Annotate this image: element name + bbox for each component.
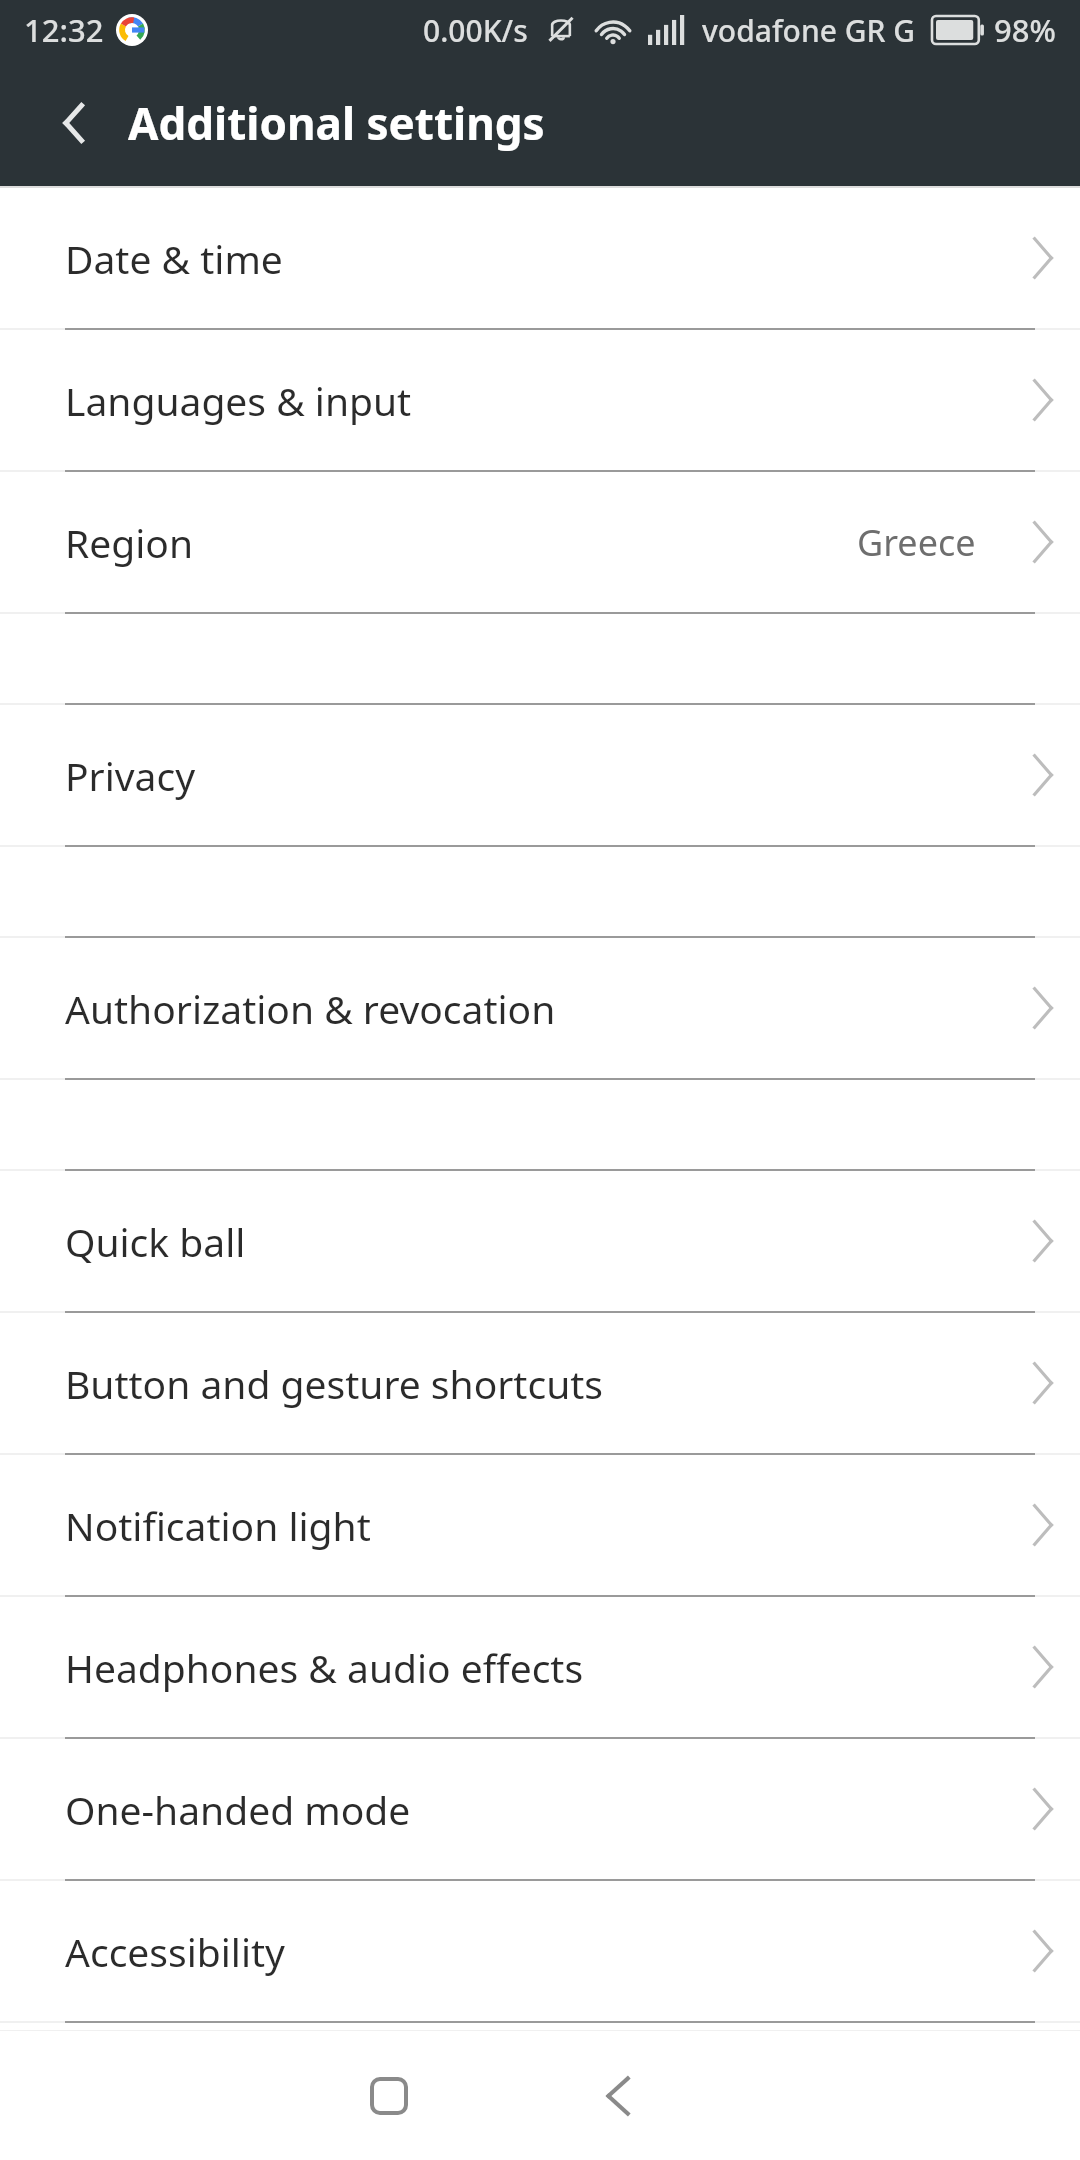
staticText: 0.00K/s (423, 10, 528, 51)
staticText: vodafone GR G (702, 10, 916, 51)
staticText: Region (65, 516, 193, 569)
staticText: One-handed mode (65, 1783, 411, 1836)
button[interactable]: Back (40, 87, 112, 159)
button[interactable]: Headphones & audio effects (0, 1597, 1080, 1737)
button[interactable]: Accessibility (0, 1881, 1080, 2021)
staticText: Greece (857, 518, 976, 567)
button[interactable]: Region (0, 472, 1080, 612)
staticText: 12:32 (24, 9, 104, 51)
staticText: Notification light (65, 1499, 371, 1552)
staticText: 98% (994, 9, 1056, 51)
button[interactable]: Date & time (0, 188, 1080, 328)
button[interactable]: Back (559, 2036, 679, 2156)
staticText: Authorization & revocation (65, 982, 556, 1035)
staticText: Quick ball (65, 1215, 246, 1268)
button[interactable]: Notification light (0, 1455, 1080, 1595)
staticText: Accessibility (65, 1925, 285, 1978)
staticText: Headphones & audio effects (65, 1641, 584, 1694)
button[interactable]: Quick ball (0, 1171, 1080, 1311)
staticText: Additional settings (128, 93, 545, 153)
button[interactable]: Privacy (0, 705, 1080, 845)
button[interactable]: One-handed mode (0, 1739, 1080, 1879)
staticText: Button and gesture shortcuts (65, 1357, 604, 1410)
staticText: Languages & input (65, 374, 412, 427)
staticText: Date & time (65, 232, 283, 285)
button[interactable]: Authorization & revocation (0, 938, 1080, 1078)
button[interactable]: Languages & input (0, 330, 1080, 470)
button[interactable]: Button and gesture shortcuts (0, 1313, 1080, 1453)
staticText: Privacy (65, 749, 196, 802)
button[interactable]: Home (329, 2036, 449, 2156)
